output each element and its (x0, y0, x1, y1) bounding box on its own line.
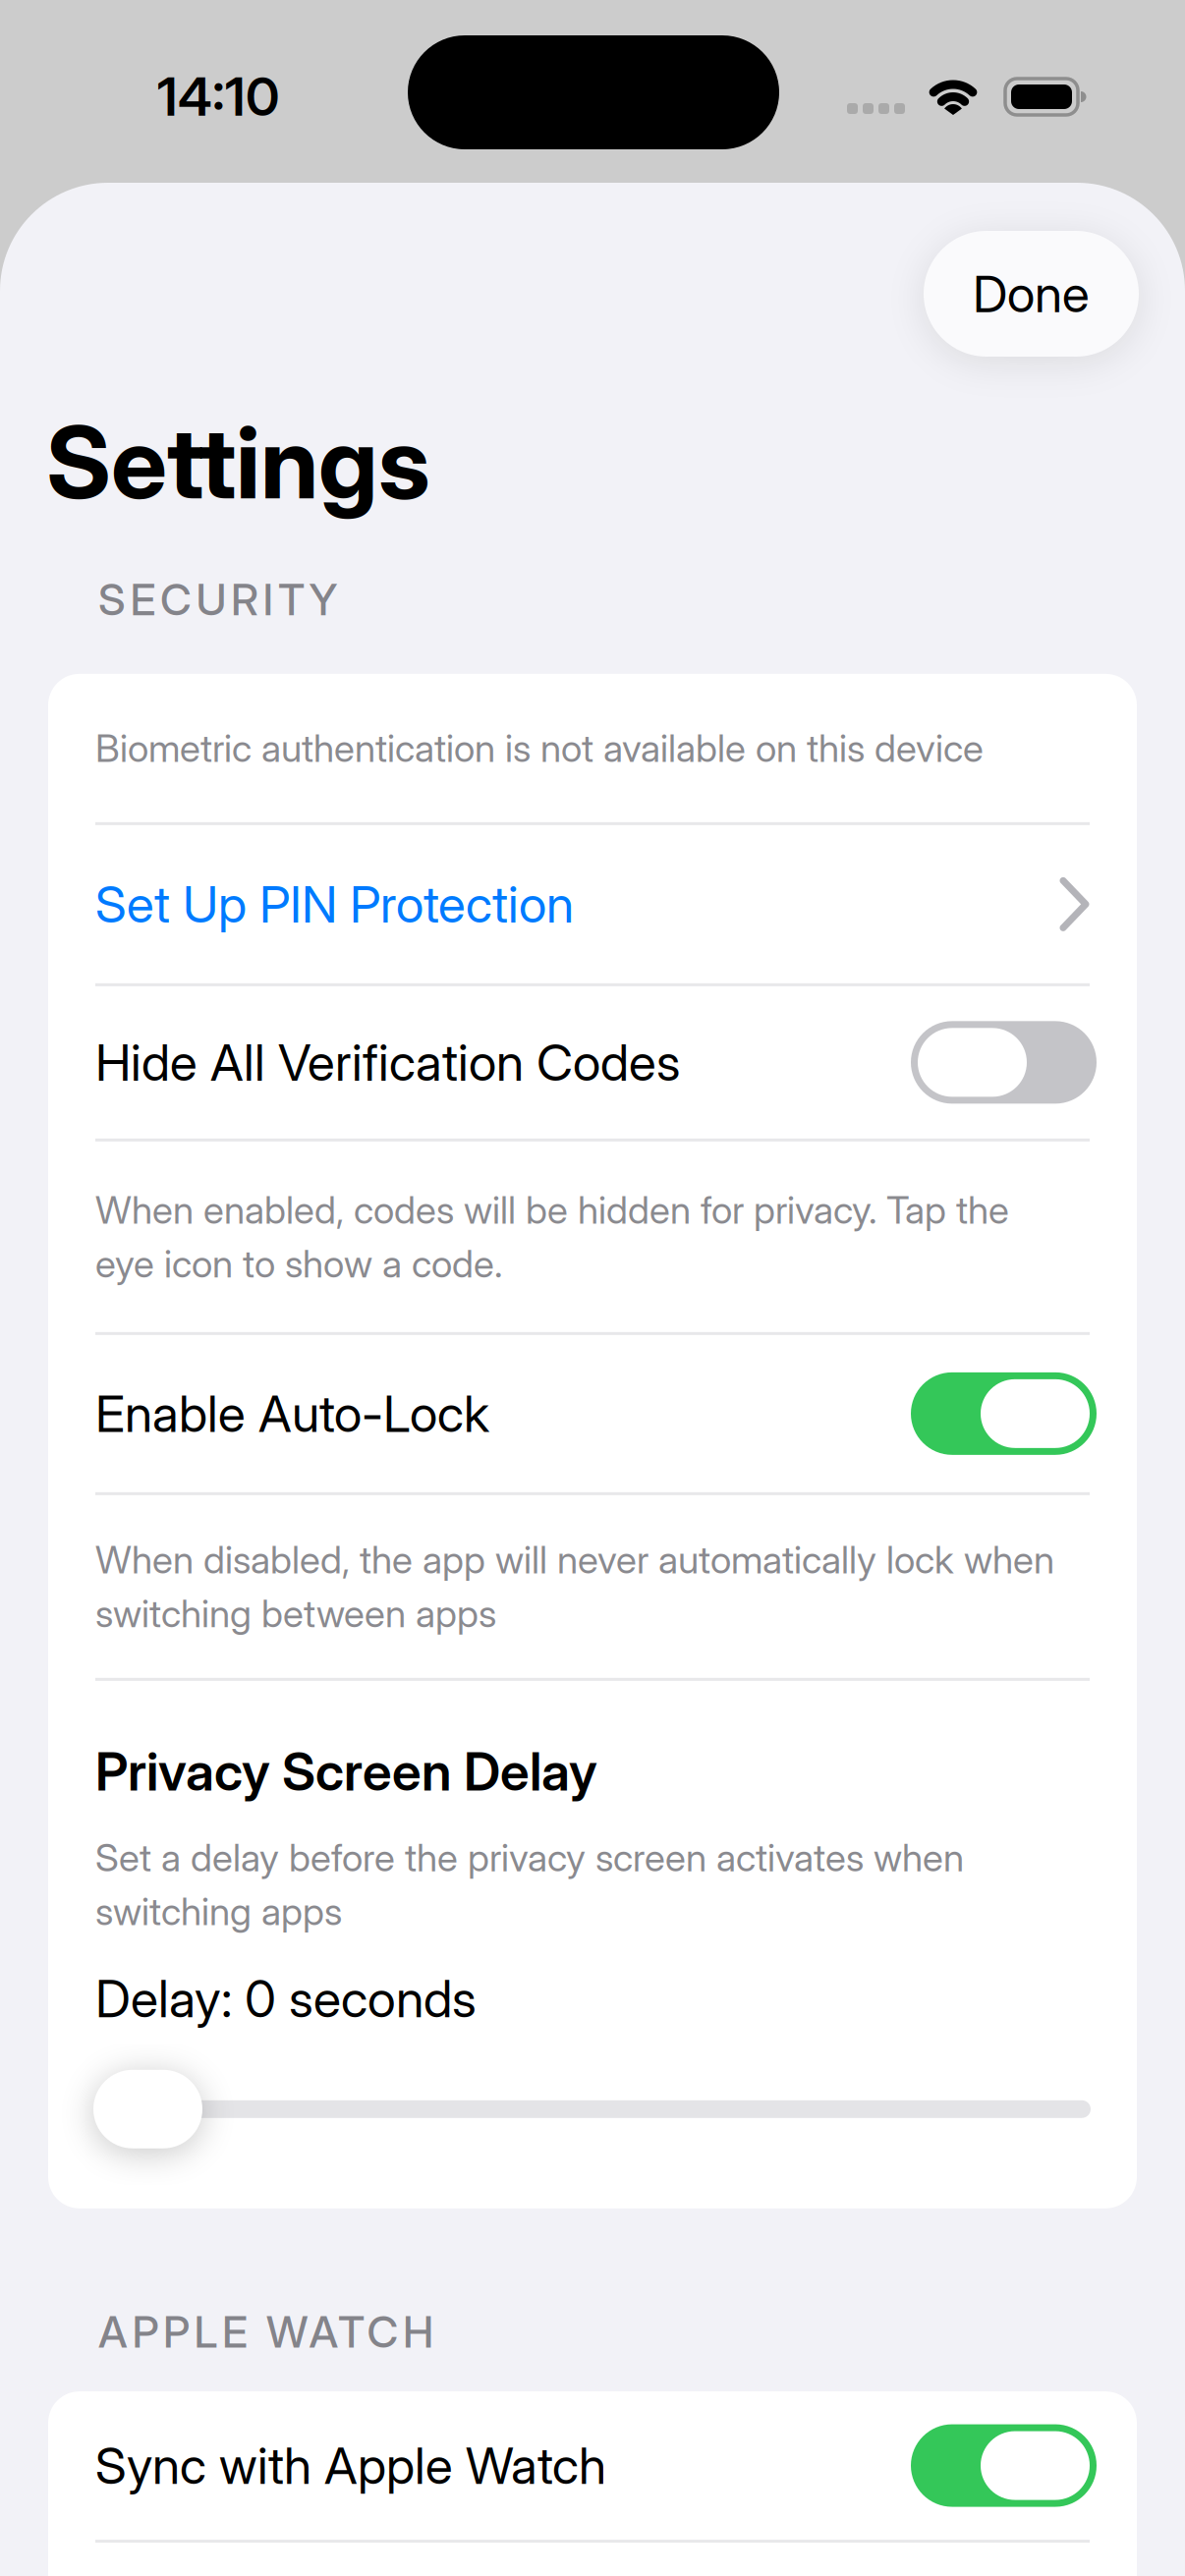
staticText: When enabled, codes will be hidden for p… (95, 1183, 1009, 1291)
staticText: APPLE WATCH (98, 2306, 433, 2358)
button[interactable]: Sync with Apple Watch (48, 2391, 1137, 2540)
staticText: Biometric authentication is not availabl… (95, 725, 984, 771)
staticText: Hide All Verification Codes (95, 1032, 680, 1093)
staticText: SECURITY (98, 573, 338, 626)
staticText: Privacy Screen Delay (95, 1740, 597, 1803)
staticText: Sync with Apple Watch (95, 2435, 606, 2496)
staticText: Done (973, 263, 1090, 324)
staticText: Delay: 0 seconds (95, 1968, 477, 2030)
staticText: Enable Auto-Lock (95, 1383, 489, 1444)
button[interactable]: Enable Auto-Lock (48, 1335, 1137, 1492)
staticText: Settings (46, 402, 430, 522)
staticText: Set Up PIN Protection (95, 874, 574, 935)
staticText: 14:10 (157, 64, 279, 128)
button[interactable]: Done (924, 231, 1139, 357)
button[interactable]: Privacy screen delay (93, 2070, 202, 2148)
staticText: Set a delay before the privacy screen ac… (95, 1831, 964, 1938)
button[interactable]: Hide All Verification Codes (48, 986, 1137, 1138)
staticText: When disabled, the app will never automa… (95, 1533, 1054, 1640)
button[interactable]: Set Up PIN Protection (48, 825, 1137, 983)
